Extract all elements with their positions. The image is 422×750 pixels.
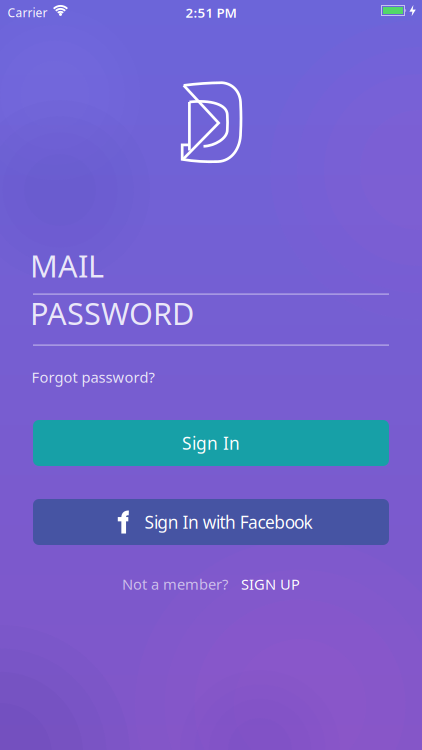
staticText: Forgot password?	[31, 367, 154, 387]
staticText: SIGN UP	[241, 574, 300, 594]
staticText: 2:51 PM	[185, 4, 236, 21]
staticText: PASSWORD	[30, 293, 194, 333]
staticText: MAIL	[30, 245, 104, 286]
button[interactable]: Forgot password?	[33, 367, 156, 387]
button[interactable]: SIGN UP	[241, 574, 300, 594]
staticText: Carrier	[7, 4, 47, 20]
button[interactable]: Sign In with Facebook	[33, 499, 389, 545]
staticText: Sign In with Facebook	[144, 510, 312, 533]
button[interactable]: Sign In	[33, 420, 389, 466]
staticText: Not a member?	[122, 574, 228, 594]
staticText: Sign In	[182, 431, 240, 454]
